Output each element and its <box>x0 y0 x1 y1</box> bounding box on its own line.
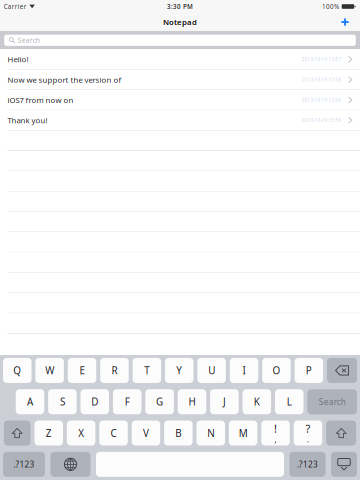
button[interactable]: O <box>262 358 291 383</box>
button[interactable]: B <box>164 421 193 446</box>
button[interactable]: D <box>80 389 109 414</box>
staticText: 2013-10-19 13:56 <box>301 117 341 123</box>
staticText: B <box>175 426 181 440</box>
button[interactable]: Shift <box>326 421 356 446</box>
button[interactable]: S <box>48 389 77 414</box>
button[interactable]: X <box>67 421 95 446</box>
staticText: Search <box>319 396 346 407</box>
button[interactable]: T <box>133 358 161 383</box>
staticText: 2013-10-19 13:56 <box>301 77 341 83</box>
button[interactable]: New note <box>335 14 355 30</box>
button[interactable]: F <box>113 389 141 414</box>
button[interactable]: Next keyboard <box>50 452 90 477</box>
staticText: U <box>208 364 215 377</box>
staticText: Search <box>18 36 40 45</box>
button[interactable]: K <box>243 389 271 414</box>
button[interactable]: U <box>197 358 226 383</box>
button[interactable]: J <box>210 389 239 414</box>
staticText: Thank you! <box>7 115 47 125</box>
button[interactable]: Thank you! <box>0 110 360 131</box>
staticText: ! <box>274 421 277 436</box>
button[interactable]: M <box>229 421 257 446</box>
staticText: W <box>45 364 54 377</box>
staticText: Now we support the version of <box>7 74 121 85</box>
staticText: ? <box>305 421 310 436</box>
staticText: L <box>287 395 292 408</box>
staticText: H <box>188 395 195 408</box>
staticText: , <box>275 434 277 445</box>
staticText: D <box>91 395 98 408</box>
staticText: S <box>60 395 65 408</box>
button[interactable]: ? <box>294 421 322 446</box>
button[interactable]: W <box>35 358 64 383</box>
button[interactable]: Shift <box>4 421 30 446</box>
button[interactable]: ! <box>261 421 290 446</box>
staticText: N <box>207 426 214 440</box>
button[interactable]: E <box>68 358 96 383</box>
button[interactable]: .?123 <box>3 452 45 477</box>
staticText: Notepad <box>163 17 197 27</box>
staticText: iOS7 from now on <box>7 95 73 105</box>
staticText: Y <box>176 364 182 377</box>
staticText: E <box>79 364 84 377</box>
staticText: Carrier <box>4 2 27 11</box>
staticText: F <box>125 395 130 408</box>
button[interactable]: Delete <box>327 358 357 383</box>
button[interactable]: V <box>132 421 160 446</box>
staticText: K <box>254 395 260 408</box>
staticText: Q <box>13 364 21 377</box>
staticText: X <box>78 426 84 440</box>
button[interactable]: R <box>100 358 129 383</box>
button[interactable]: Q <box>3 358 31 383</box>
button[interactable]: P <box>295 358 323 383</box>
button[interactable]: Search <box>4 35 356 46</box>
button[interactable]: Now we support the version of <box>0 70 360 90</box>
staticText: T <box>144 364 149 377</box>
button[interactable]: Y <box>165 358 193 383</box>
staticText: M <box>239 426 248 440</box>
staticText: 3:30 PM <box>167 2 193 11</box>
staticText: 100% <box>322 2 339 11</box>
staticText: . <box>307 434 309 445</box>
button[interactable]: Dismiss keyboard <box>331 452 357 477</box>
button[interactable]: C <box>99 421 128 446</box>
staticText: .?123 <box>13 459 34 470</box>
staticText: 2013-10-19 13:56 <box>301 97 341 103</box>
button[interactable]: Z <box>34 421 63 446</box>
staticText: C <box>110 426 116 440</box>
button[interactable]: G <box>145 389 174 414</box>
staticText: .?123 <box>297 459 318 470</box>
staticText: 2013-10-19 13:57 <box>301 56 341 62</box>
button[interactable]: .?123 <box>289 452 325 477</box>
staticText: O <box>272 364 280 377</box>
button[interactable]: H <box>178 389 206 414</box>
staticText: V <box>143 426 149 440</box>
staticText: Hello! <box>7 54 28 65</box>
button[interactable]: L <box>275 389 303 414</box>
staticText: R <box>111 364 117 377</box>
staticText: G <box>156 395 163 408</box>
staticText: Z <box>46 426 52 440</box>
button[interactable]: iOS7 from now on <box>0 90 360 110</box>
button[interactable]: A <box>16 389 44 414</box>
button[interactable]: N <box>196 421 225 446</box>
staticText: P <box>306 364 312 377</box>
staticText: I <box>243 364 246 377</box>
button[interactable]: Hello! <box>0 49 360 70</box>
staticText: J <box>223 395 226 408</box>
button[interactable]: Search <box>307 389 357 414</box>
button[interactable]: I <box>230 358 258 383</box>
staticText: A <box>27 395 33 408</box>
